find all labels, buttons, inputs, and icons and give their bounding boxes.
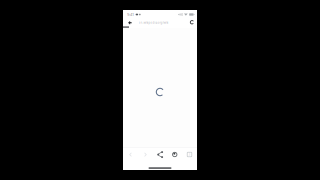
button[interactable]: en.wikipedia.org/wiki — [138, 19, 184, 26]
button[interactable]: Back — [125, 149, 135, 159]
button[interactable]: Stop loading — [187, 18, 196, 27]
staticText: 3 — [188, 153, 190, 156]
button[interactable]: Forward — [140, 149, 150, 159]
button[interactable]: Back — [125, 18, 134, 27]
staticText: en.wikipedia.org/wiki — [138, 21, 168, 24]
button[interactable]: Tabs — [184, 149, 194, 159]
button[interactable]: Share — [155, 149, 165, 159]
button[interactable]: Account — [170, 149, 180, 159]
staticText: 9:41 — [127, 12, 134, 17]
